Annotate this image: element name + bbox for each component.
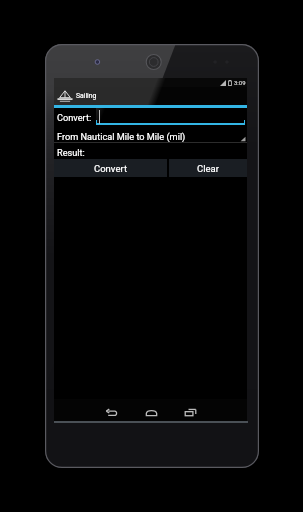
staticText: From Nautical Mile to Mile (mil) — [57, 131, 186, 142]
staticText: Convert: — [57, 112, 92, 123]
button[interactable]: Recents — [178, 403, 202, 421]
button[interactable]: Convert — [54, 159, 167, 177]
button[interactable]: From Nautical Mile to Mile (mil) — [54, 125, 247, 143]
staticText: Result: — [57, 147, 85, 158]
staticText: Convert — [94, 163, 127, 174]
button[interactable]: Back — [99, 403, 123, 421]
staticText: 3:09 — [234, 79, 246, 86]
button[interactable] — [96, 108, 245, 125]
staticText: Clear — [197, 163, 219, 174]
staticText: Sailing — [76, 92, 97, 100]
button[interactable]: Home — [139, 403, 163, 421]
button[interactable]: Clear — [169, 159, 247, 177]
